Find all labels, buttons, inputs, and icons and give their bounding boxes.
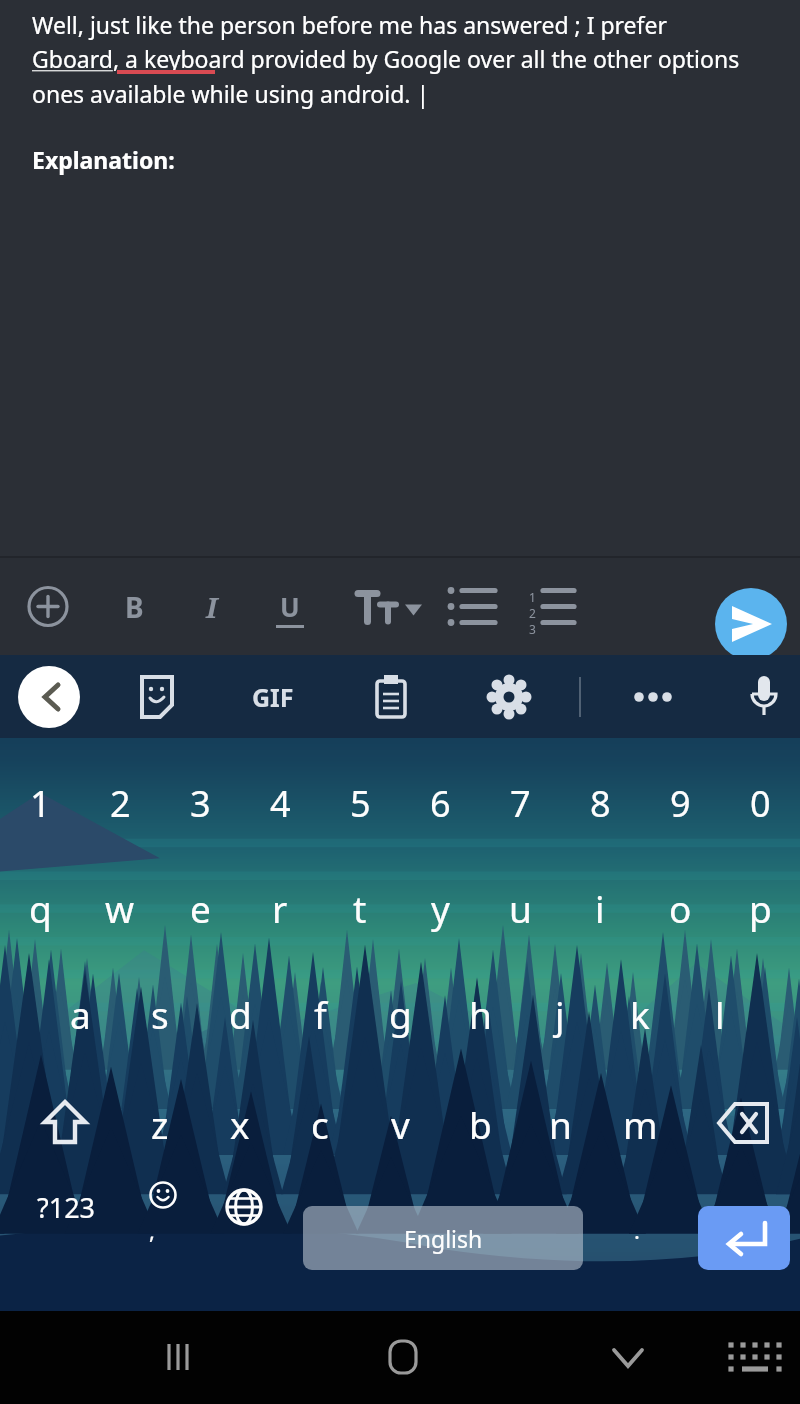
button[interactable]: v (360, 1088, 440, 1160)
button[interactable]: Backspace (704, 1087, 784, 1159)
button[interactable]: Hide keyboard (590, 1325, 666, 1389)
staticText: U (280, 589, 300, 624)
staticText: a (70, 989, 91, 1039)
staticText: l (715, 989, 725, 1039)
button[interactable]: 0 (720, 767, 800, 839)
button[interactable]: 9 (640, 767, 720, 839)
button[interactable]: r (240, 872, 320, 944)
button[interactable]: Back (18, 666, 80, 728)
button[interactable]: f (280, 978, 360, 1050)
staticText: p (749, 883, 772, 933)
button[interactable]: Bulleted list (438, 558, 508, 655)
button[interactable]: Recent apps (140, 1325, 216, 1389)
button[interactable]: Enter (698, 1206, 790, 1270)
button[interactable]: n (520, 1088, 600, 1160)
button[interactable]: u (480, 872, 560, 944)
staticText: n (549, 1099, 572, 1149)
button[interactable]: d (200, 978, 280, 1050)
button[interactable]: Numbered list (514, 558, 586, 655)
button[interactable]: o (640, 872, 720, 944)
button[interactable]: Emoji (132, 1167, 194, 1223)
button[interactable]: c (280, 1088, 360, 1160)
button[interactable]: GIF (240, 666, 306, 728)
staticText: 9 (670, 779, 691, 828)
button[interactable]: l (680, 978, 760, 1050)
staticText: i (595, 883, 605, 933)
button[interactable]: 8 (560, 767, 640, 839)
button[interactable]: a (40, 978, 120, 1050)
button[interactable]: w (80, 872, 160, 944)
button[interactable]: Italic (182, 558, 242, 655)
button[interactable]: Switch keyboard (720, 1325, 790, 1389)
button[interactable]: x (200, 1088, 280, 1160)
staticText: Well, just like the person before me has… (32, 9, 744, 110)
button[interactable]: Text size (348, 558, 428, 655)
staticText: z (151, 1099, 169, 1149)
staticText: m (623, 1099, 658, 1149)
button[interactable]: 2 (80, 767, 160, 839)
button[interactable]: e (160, 872, 240, 944)
staticText: b (469, 1099, 492, 1149)
button[interactable]: j (520, 978, 600, 1050)
staticText: r (272, 883, 288, 933)
staticText: 0 (750, 779, 771, 828)
staticText: 1 (529, 589, 536, 605)
staticText: 4 (270, 779, 291, 828)
button[interactable]: q (0, 872, 80, 944)
staticText: Explanation: (32, 144, 175, 175)
button[interactable]: h (440, 978, 520, 1050)
button[interactable]: p (720, 872, 800, 944)
staticText: u (509, 883, 532, 933)
button[interactable]: English (303, 1206, 583, 1270)
staticText: GIF (252, 680, 294, 714)
button[interactable]: Change language (212, 1175, 276, 1239)
button[interactable]: 7 (480, 767, 560, 839)
staticText: x (230, 1099, 250, 1149)
button[interactable]: 5 (320, 767, 400, 839)
button[interactable]: Shift (26, 1087, 104, 1159)
staticText: h (469, 989, 492, 1039)
staticText: j (555, 989, 565, 1039)
button[interactable]: b (440, 1088, 520, 1160)
staticText: 7 (510, 779, 531, 828)
button[interactable]: 1 (0, 767, 80, 839)
staticText: f (314, 989, 327, 1039)
button[interactable]: m (600, 1088, 680, 1160)
staticText: t (353, 883, 367, 933)
staticText: . (634, 1215, 640, 1245)
button[interactable]: s (120, 978, 200, 1050)
button[interactable]: Bold (104, 558, 164, 655)
button[interactable]: ?123 (18, 1175, 114, 1239)
button[interactable]: Underline (260, 558, 320, 655)
staticText: 2 (110, 779, 131, 828)
staticText: , (149, 1215, 155, 1245)
staticText: s (151, 989, 169, 1039)
staticText: c (311, 1099, 329, 1149)
staticText: ?123 (37, 1189, 96, 1226)
staticText: k (630, 989, 650, 1039)
button[interactable]: 3 (160, 767, 240, 839)
staticText: y (431, 883, 450, 933)
staticText: 1 (30, 779, 51, 828)
button[interactable]: Clipboard (360, 666, 422, 728)
staticText: w (105, 883, 135, 933)
button[interactable]: Settings (478, 666, 540, 728)
button[interactable]: k (600, 978, 680, 1050)
button[interactable]: Home (365, 1325, 441, 1389)
button[interactable]: Stickers (126, 666, 188, 728)
button[interactable]: 4 (240, 767, 320, 839)
button[interactable]: t (320, 872, 400, 944)
button[interactable]: g (360, 978, 440, 1050)
button[interactable]: y (400, 872, 480, 944)
staticText: o (669, 883, 692, 933)
button[interactable]: Send (715, 588, 787, 660)
staticText: d (229, 989, 252, 1039)
button[interactable]: Add (16, 558, 80, 655)
button[interactable]: Voice input (736, 666, 792, 728)
button[interactable]: z (120, 1088, 200, 1160)
staticText: v (391, 1099, 410, 1149)
button[interactable]: More options (622, 666, 684, 728)
staticText: 8 (590, 779, 611, 828)
button[interactable]: 6 (400, 767, 480, 839)
button[interactable]: i (560, 872, 640, 944)
